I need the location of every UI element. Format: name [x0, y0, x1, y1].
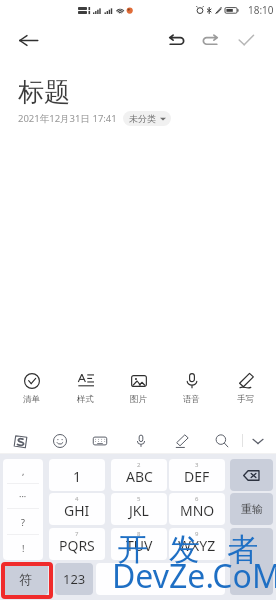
- staticText: ?: [21, 516, 25, 528]
- staticText: 语音: [183, 394, 200, 405]
- button[interactable]: 5: [111, 493, 167, 525]
- button[interactable]: 样式: [63, 368, 107, 405]
- staticText: DEF: [184, 467, 210, 486]
- button[interactable]: 1: [49, 459, 105, 491]
- button[interactable]: ?: [3, 509, 43, 534]
- button[interactable]: Emoji: [47, 428, 73, 454]
- staticText: !: [22, 542, 25, 554]
- staticText: 3: [195, 461, 199, 469]
- button[interactable]: 语音: [169, 368, 213, 405]
- staticText: ,: [22, 465, 25, 477]
- button[interactable]: Keyboard: [87, 428, 113, 454]
- button[interactable]: ,: [3, 459, 43, 560]
- button[interactable]: 123: [55, 563, 93, 595]
- staticText: 8: [137, 530, 141, 538]
- button[interactable]: Search: [209, 428, 235, 454]
- staticText: 开: [117, 530, 148, 569]
- staticText: TUV: [126, 536, 153, 555]
- button[interactable]: 未分类: [123, 111, 171, 126]
- button[interactable]: ,: [3, 459, 43, 483]
- staticText: 手写: [237, 394, 254, 405]
- button[interactable]: 4: [49, 493, 105, 525]
- button[interactable]: Delete: [230, 459, 273, 491]
- button[interactable]: [230, 528, 273, 595]
- staticText: 发: [169, 530, 200, 569]
- button[interactable]: 6: [169, 493, 225, 525]
- staticText: 清单: [23, 394, 40, 405]
- staticText: PQRS: [59, 536, 95, 555]
- staticText: WXYZ: [178, 536, 216, 555]
- staticText: JKL: [129, 501, 149, 520]
- staticText: 符: [19, 571, 32, 587]
- staticText: 123: [63, 570, 86, 588]
- button[interactable]: Redo: [197, 27, 223, 53]
- button[interactable]: Done: [233, 27, 259, 53]
- button[interactable]: 图片: [116, 368, 160, 405]
- staticText: 样式: [77, 394, 94, 405]
- button[interactable]: Voice input: [128, 428, 154, 454]
- button[interactable]: Handwriting: [169, 428, 195, 454]
- button[interactable]: [96, 563, 225, 595]
- staticText: 9: [195, 530, 199, 538]
- button[interactable]: 2: [111, 459, 167, 491]
- staticText: DevZe.CoM: [112, 554, 276, 598]
- staticText: 图片: [130, 394, 147, 405]
- staticText: 1: [73, 467, 82, 486]
- staticText: ···: [19, 490, 27, 502]
- staticText: MNO: [180, 501, 215, 520]
- button[interactable]: Back: [13, 25, 43, 55]
- staticText: 2: [137, 461, 141, 469]
- button[interactable]: 8: [111, 528, 167, 560]
- button[interactable]: Hide keyboard: [246, 429, 270, 453]
- staticText: GHI: [64, 501, 90, 520]
- button[interactable]: Undo: [163, 27, 189, 53]
- staticText: 2021年12月31日 17:41: [18, 112, 117, 125]
- button[interactable]: !: [3, 535, 43, 560]
- staticText: 7: [75, 530, 79, 538]
- staticText: 5: [137, 495, 141, 503]
- staticText: 4: [75, 495, 79, 503]
- button[interactable]: 重输: [230, 493, 273, 525]
- staticText: 标题: [18, 76, 70, 109]
- button[interactable]: 清单: [9, 368, 53, 405]
- staticText: 6: [195, 495, 199, 503]
- button[interactable]: 符: [3, 563, 48, 595]
- staticText: 18:10: [248, 3, 274, 17]
- staticText: ABC: [126, 467, 153, 486]
- button[interactable]: 9: [169, 528, 225, 560]
- button[interactable]: ···: [3, 484, 43, 508]
- staticText: 未分类: [129, 113, 156, 124]
- button[interactable]: Sogou input: [7, 428, 33, 454]
- staticText: 者: [227, 530, 258, 569]
- staticText: 重输: [241, 502, 263, 516]
- button[interactable]: 7: [49, 528, 105, 560]
- button[interactable]: 手写: [223, 368, 267, 405]
- button[interactable]: 3: [169, 459, 225, 491]
